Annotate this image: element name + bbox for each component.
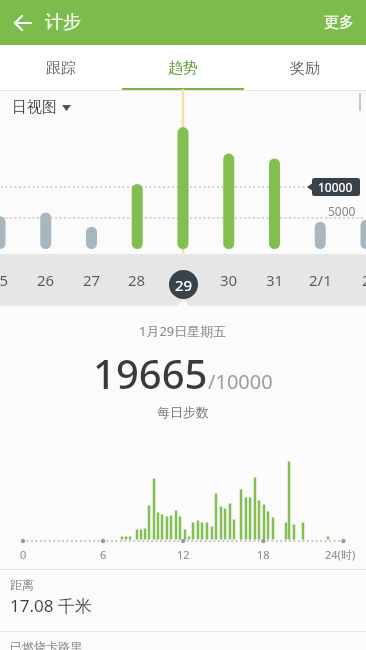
staticText: 跟踪	[46, 59, 76, 78]
staticText: 日视图	[12, 98, 57, 117]
staticText: 距离	[10, 577, 34, 592]
staticText: 计步	[45, 11, 81, 34]
button[interactable]: 2	[343, 254, 366, 306]
button[interactable]: 2/1	[297, 254, 343, 306]
staticText: 0	[20, 547, 27, 562]
staticText: 6	[100, 547, 107, 562]
staticText: 25	[0, 270, 9, 290]
button[interactable]: 27	[69, 254, 115, 306]
staticText: 28	[128, 270, 146, 290]
staticText: 5000	[328, 203, 356, 219]
staticText: 更多	[324, 13, 354, 32]
button[interactable]: 奖励	[244, 45, 366, 91]
button[interactable]: 28	[114, 254, 160, 306]
staticText: 30	[220, 270, 238, 290]
staticText: 趋势	[168, 59, 198, 78]
staticText: 每日步数	[157, 404, 209, 420]
button[interactable]: 日视图	[10, 96, 73, 119]
button[interactable]	[0, 0, 45, 45]
staticText: 24(时)	[325, 547, 356, 562]
staticText: 26	[37, 270, 55, 290]
button[interactable]: 趋势	[122, 45, 244, 91]
button[interactable]: 30	[206, 254, 252, 306]
button[interactable]: 26	[23, 254, 69, 306]
staticText: 10000	[318, 179, 353, 195]
button[interactable]: 29	[160, 254, 206, 306]
staticText: 18	[257, 547, 270, 562]
staticText: 2	[362, 270, 366, 290]
staticText: 奖励	[290, 59, 320, 78]
button[interactable]: 已燃烧卡路里	[0, 632, 366, 650]
staticText: 27	[83, 270, 101, 290]
staticText: 17.08 千米	[10, 594, 92, 617]
button[interactable]: 跟踪	[0, 45, 122, 91]
button[interactable]: 25	[0, 254, 23, 306]
staticText: /10000	[208, 368, 273, 395]
staticText: 31	[266, 270, 284, 290]
staticText: 19665	[93, 346, 208, 400]
staticText: 1月29日星期五	[139, 322, 227, 340]
staticText: 29	[175, 275, 193, 295]
button[interactable]: 31	[252, 254, 298, 306]
button[interactable]: 距离	[0, 570, 366, 631]
button[interactable]: 更多	[312, 0, 366, 45]
staticText: 2/1	[309, 270, 332, 290]
staticText: 12	[177, 547, 190, 562]
staticText: 已燃烧卡路里	[10, 639, 82, 650]
